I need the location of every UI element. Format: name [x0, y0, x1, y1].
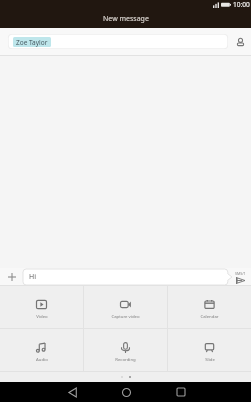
- staticText: Recording: [115, 356, 136, 362]
- button[interactable]: Send: [235, 271, 246, 284]
- button[interactable]: Video: [0, 286, 83, 328]
- button[interactable]: Calendar: [168, 286, 251, 328]
- button[interactable]: Slide: [168, 329, 251, 371]
- button[interactable]: Audio: [0, 329, 83, 371]
- staticText: SMS/1: [235, 271, 246, 276]
- button[interactable]: Home: [116, 382, 136, 402]
- button[interactable]: Zoe Taylor: [8, 34, 228, 49]
- button[interactable]: Add attachment: [4, 269, 19, 284]
- staticText: Calendar: [200, 313, 219, 319]
- staticText: Zoe Taylor: [16, 38, 48, 47]
- button[interactable]: Add recipient: [231, 33, 249, 51]
- staticText: Audio: [36, 356, 48, 362]
- button[interactable]: Back: [62, 382, 82, 402]
- button[interactable]: Recents: [171, 382, 191, 402]
- button[interactable]: Recording: [84, 329, 167, 371]
- staticText: Capture video: [111, 313, 140, 319]
- staticText: Video: [36, 313, 48, 319]
- staticText: New message: [103, 14, 149, 24]
- staticText: Hi: [29, 272, 36, 282]
- staticText: Slide: [205, 356, 215, 362]
- staticText: 10:00: [233, 0, 250, 9]
- button[interactable]: Capture video: [84, 286, 167, 328]
- button[interactable]: Hi: [23, 269, 232, 285]
